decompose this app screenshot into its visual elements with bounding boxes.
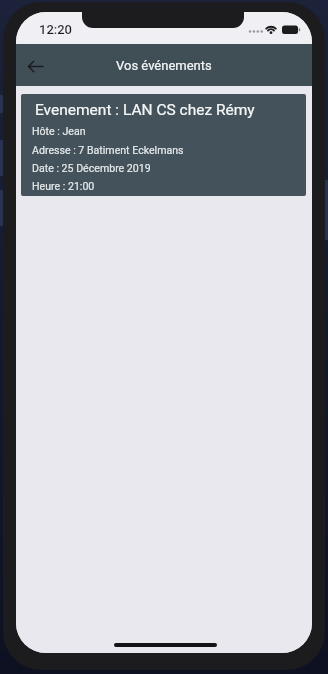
staticText: Hôte : Jean Adresse : 7 Batiment Eckelma…: [32, 125, 184, 192]
staticText: 12:20: [39, 22, 73, 37]
staticText: Evenement : LAN CS chez Rémy: [35, 101, 255, 119]
button[interactable]: Evenement : LAN CS chez Rémy: [21, 94, 306, 196]
button[interactable]: [22, 52, 50, 80]
staticText: Vos événements: [116, 58, 212, 73]
